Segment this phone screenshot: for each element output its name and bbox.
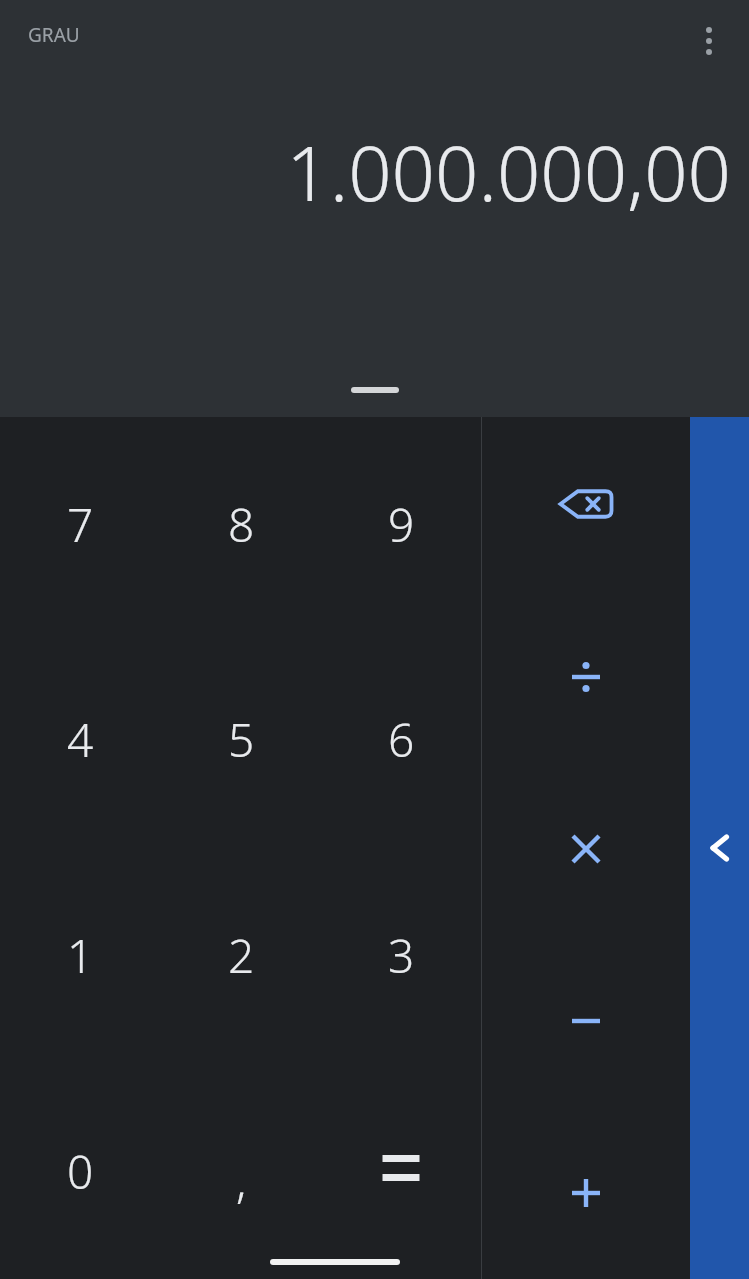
button[interactable]: , xyxy=(161,1063,321,1279)
button[interactable]: Open scientific keypad xyxy=(690,417,749,1279)
button[interactable]: Expand history xyxy=(317,379,433,401)
staticText: 6 xyxy=(388,708,415,771)
button[interactable]: Backspace xyxy=(482,417,690,590)
button[interactable]: Divide xyxy=(482,590,690,763)
button[interactable]: Equals xyxy=(321,1063,481,1279)
button[interactable]: 6 xyxy=(321,632,481,847)
staticText: , xyxy=(236,1149,247,1212)
staticText: 4 xyxy=(67,708,94,771)
staticText: 9 xyxy=(388,493,415,556)
button[interactable]: GRAU xyxy=(18,16,90,54)
button[interactable]: 4 xyxy=(0,632,161,847)
button[interactable]: Minus xyxy=(482,935,690,1107)
staticText: 8 xyxy=(228,493,255,556)
button[interactable]: More options xyxy=(681,13,737,69)
staticText: 1.000.000,00 xyxy=(286,120,731,224)
button[interactable]: 8 xyxy=(161,417,321,632)
staticText: 3 xyxy=(388,924,415,987)
button[interactable]: 9 xyxy=(321,417,481,632)
staticText: GRAU xyxy=(28,22,80,48)
button[interactable]: Plus xyxy=(482,1107,690,1279)
staticText: 5 xyxy=(228,708,255,771)
staticText: 0 xyxy=(67,1140,94,1203)
button[interactable]: 1 xyxy=(0,847,161,1063)
staticText: 2 xyxy=(228,924,255,987)
button[interactable]: 0 xyxy=(0,1063,161,1279)
button[interactable]: 5 xyxy=(161,632,321,847)
button[interactable]: 3 xyxy=(321,847,481,1063)
staticText: 1 xyxy=(67,924,94,987)
button[interactable]: 2 xyxy=(161,847,321,1063)
button[interactable]: Multiply xyxy=(482,763,690,935)
button[interactable]: 7 xyxy=(0,417,161,632)
staticText: 7 xyxy=(67,493,94,556)
